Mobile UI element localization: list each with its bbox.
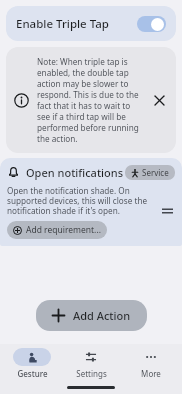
staticText: Open notifications	[26, 165, 124, 180]
button[interactable]: Add Action	[36, 300, 147, 331]
staticText: Gesture	[17, 368, 48, 379]
button[interactable]: Gesture	[4, 348, 60, 379]
staticText: Settings	[76, 368, 107, 379]
staticText: Service	[142, 167, 169, 178]
button[interactable]: More	[123, 348, 179, 379]
button[interactable]: Open notifications	[0, 158, 182, 246]
staticText: Open the notification shade. On supporte…	[7, 185, 155, 217]
staticText: Add Action	[73, 308, 131, 323]
staticText: Note: When triple tap is enabled, the do…	[37, 56, 144, 144]
button[interactable]: Dismiss note	[150, 91, 168, 109]
button[interactable]: Settings	[63, 348, 119, 379]
staticText: Enable Triple Tap	[16, 16, 109, 32]
button[interactable]: Enable Triple Tap	[6, 6, 176, 41]
staticText: More	[141, 368, 161, 379]
other: Reorder	[159, 185, 175, 215]
staticText: Add requirement...	[26, 224, 101, 236]
button[interactable]: Add requirement...	[7, 221, 107, 239]
button[interactable]: Service	[125, 165, 175, 180]
